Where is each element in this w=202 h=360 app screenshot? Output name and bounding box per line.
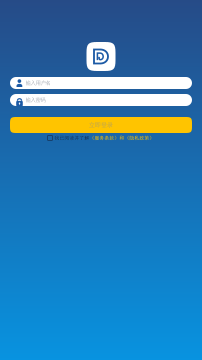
button[interactable]: 输入用户名 (10, 77, 192, 89)
staticText: 立即登录 (89, 121, 113, 129)
staticText: 输入用户名 (25, 80, 50, 86)
staticText: 我已阅读并了解 (54, 135, 89, 141)
button[interactable]: 《服务条款》和《隐私政策》 (89, 135, 154, 141)
staticText: 《服务条款》和《隐私政策》 (89, 135, 154, 141)
button[interactable]: 立即登录 (10, 117, 192, 133)
button[interactable]: 输入密码 (10, 94, 192, 106)
staticText: 输入密码 (25, 97, 45, 103)
button[interactable]: Agree to terms (47, 135, 54, 140)
